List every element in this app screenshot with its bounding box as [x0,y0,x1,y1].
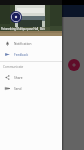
button[interactable]: Notification [0,38,62,49]
staticText: Send [14,87,22,91]
button[interactable]: Add [68,59,80,71]
staticText: Feedback [14,53,29,57]
button[interactable]: Send [0,83,62,94]
staticText: Patoranking Multipurpose Hall, Ekiti [1,27,45,31]
button[interactable]: Feedback [0,49,62,60]
button[interactable]: Share [0,72,62,83]
staticText: Communicate [3,65,24,69]
staticText: Share [14,76,23,80]
staticText: Notification [14,42,32,46]
